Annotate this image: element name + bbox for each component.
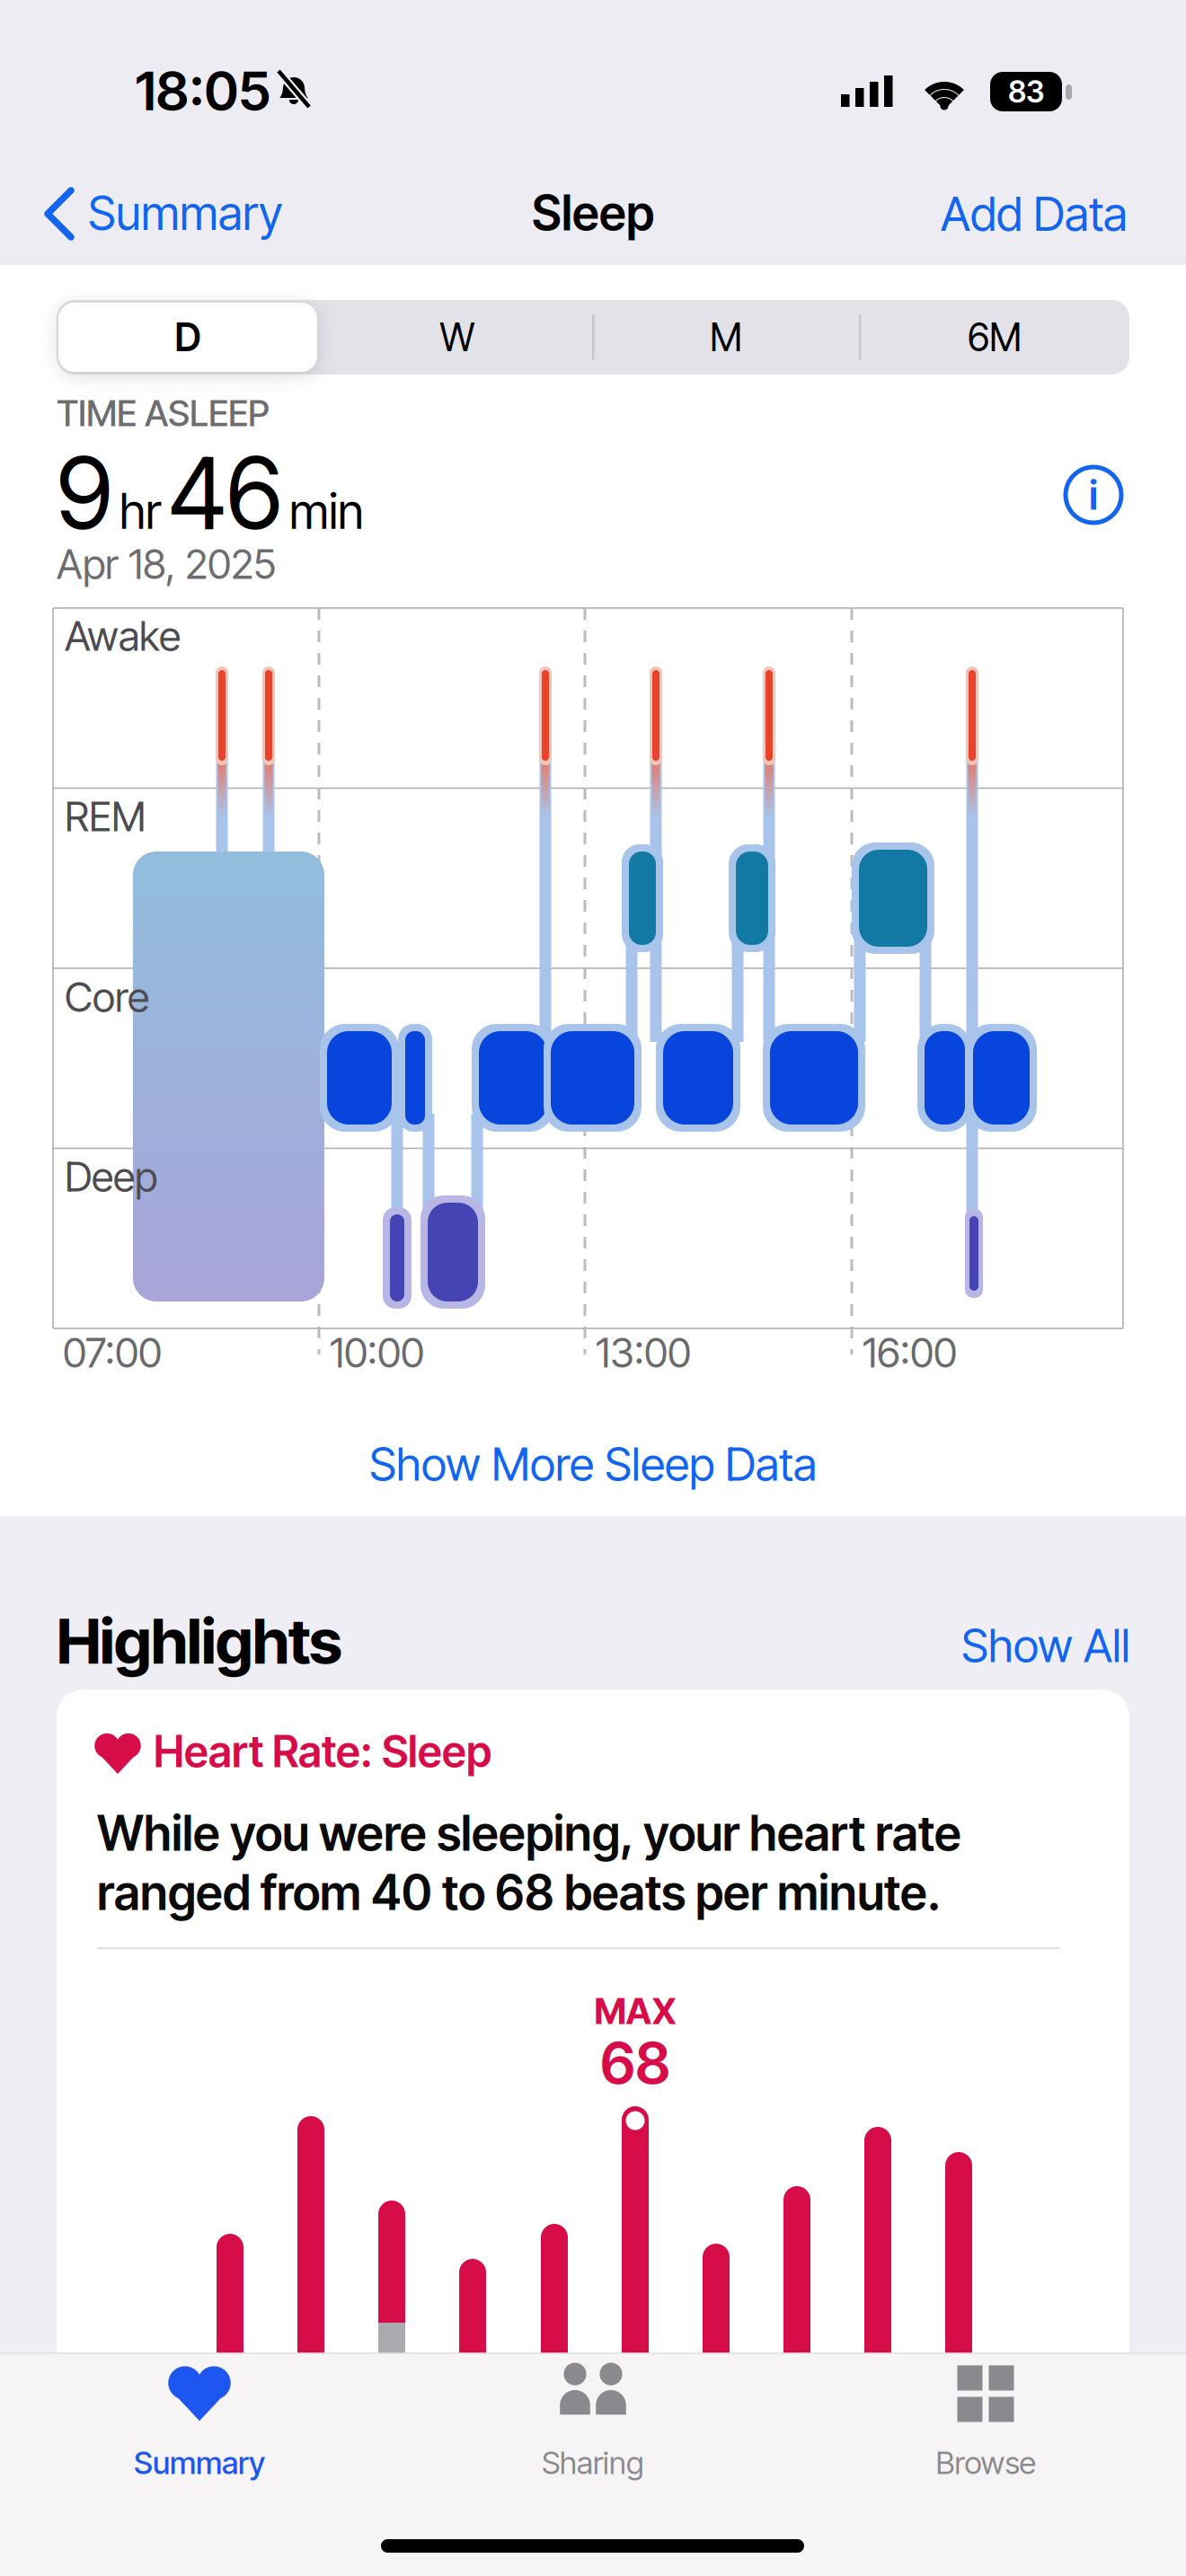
staticText: 83 [1008, 74, 1044, 109]
staticText: W [440, 315, 475, 360]
staticText: Sharing [542, 2445, 644, 2481]
staticText: Awake [65, 612, 181, 660]
button[interactable]: Browse [837, 2358, 1134, 2492]
staticText: Apr 18, 2025 [57, 540, 276, 588]
button[interactable]: W [327, 301, 588, 373]
staticText: Heart Rate: Sleep [154, 1726, 491, 1777]
staticText: 46 [168, 435, 282, 551]
button[interactable]: Show All [888, 1611, 1130, 1680]
button[interactable]: Summary [51, 2358, 348, 2492]
button[interactable]: M [596, 301, 856, 373]
staticText: Core [65, 973, 149, 1021]
staticText: TIME ASLEEP [57, 392, 270, 434]
button[interactable]: Summary [38, 172, 343, 255]
staticText: 6M [968, 315, 1022, 360]
button[interactable]: Sharing [445, 2358, 741, 2492]
staticText: 16:00 [863, 1329, 957, 1377]
staticText: REM [65, 792, 146, 841]
button[interactable]: Show More Sleep Data [252, 1426, 934, 1502]
staticText: Show More Sleep Data [369, 1437, 817, 1491]
staticText: 68 [600, 2029, 670, 2097]
staticText: While you were sleeping, your heart rate [97, 1805, 961, 1861]
staticText: Summary [88, 185, 283, 240]
staticText: D [175, 315, 201, 360]
staticText: Deep [65, 1153, 157, 1201]
staticText: Sleep [532, 185, 654, 241]
staticText: Summary [134, 2445, 265, 2481]
button[interactable]: Add Data [861, 172, 1130, 255]
staticText: Add Data [941, 186, 1128, 241]
staticText: 18:05 [135, 59, 271, 123]
staticText: ranged from 40 to 68 beats per minute. [97, 1864, 941, 1921]
staticText: i [1089, 471, 1098, 519]
staticText: 9 [57, 435, 112, 551]
button[interactable]: i [1062, 463, 1125, 526]
staticText: M [710, 315, 742, 360]
staticText: Highlights [57, 1604, 342, 1678]
button[interactable]: 6M [864, 301, 1125, 373]
staticText: Show All [961, 1619, 1130, 1672]
staticText: 10:00 [330, 1329, 424, 1377]
staticText: 13:00 [596, 1329, 691, 1377]
staticText: MAX [594, 1990, 676, 2032]
staticText: hr [119, 483, 161, 540]
staticText: min [289, 483, 364, 540]
staticText: Browse [936, 2445, 1036, 2481]
button[interactable]: Heart Rate: Sleep [57, 1689, 1129, 2576]
button[interactable]: D [58, 303, 317, 372]
staticText: 07:00 [63, 1329, 162, 1377]
